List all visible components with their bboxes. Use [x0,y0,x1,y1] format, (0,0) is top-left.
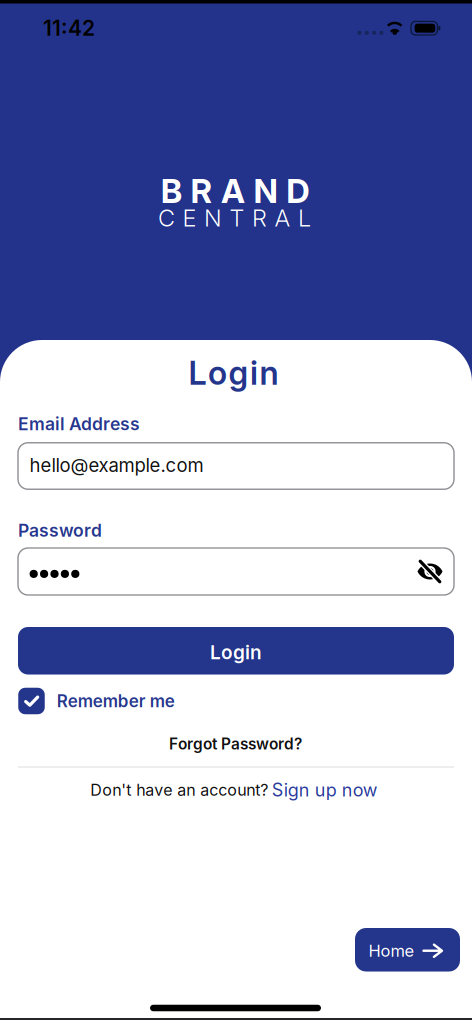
staticText: R [252,204,267,232]
staticText: Don't have an account? [90,780,268,800]
staticText: Login [210,641,262,664]
staticText: L [298,204,311,232]
button[interactable]: hello@example.com [18,443,454,489]
staticText: Sign up now [272,779,378,801]
button[interactable]: Login [18,627,454,674]
staticText: R [190,171,212,211]
staticText: Forgot Password? [169,735,302,753]
staticText: N [204,204,222,232]
staticText: Home [368,941,414,961]
staticText: C [158,204,175,232]
staticText: N [254,171,278,211]
button[interactable]: Forgot Password? [169,735,302,753]
staticText: hello@example.com [29,454,203,476]
staticText: D [286,171,309,211]
button[interactable] [18,548,454,595]
button[interactable]: Sign up now [272,779,378,801]
staticText: E [182,204,196,232]
staticText: 11:42 [43,15,95,41]
staticText: T [229,204,244,232]
staticText: Email Address [18,413,140,435]
staticText: B [161,171,182,211]
button[interactable]: Remember me [18,688,175,714]
staticText: Login [188,353,278,393]
staticText: A [221,171,245,211]
staticText: Remember me [57,691,175,711]
staticText: Password [18,520,102,541]
staticText: A [274,204,290,232]
button[interactable]: Home [355,928,460,971]
